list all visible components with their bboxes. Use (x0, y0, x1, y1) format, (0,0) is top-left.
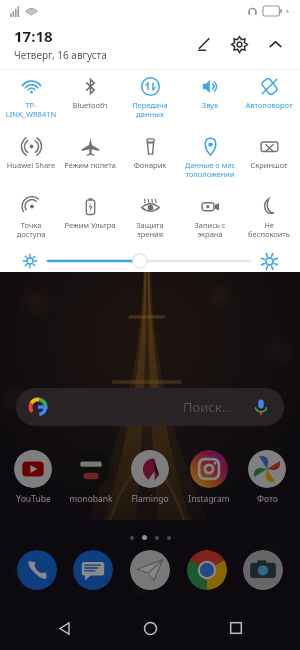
staticText: Фото (257, 493, 278, 505)
button[interactable]: Lower brightness (20, 251, 40, 271)
staticText: Фонарик (121, 160, 179, 170)
button[interactable]: Автоповорот (240, 74, 298, 130)
staticText: Flamingo (131, 493, 169, 505)
staticText: Запись с экрана (181, 220, 239, 239)
staticText: Защита зрения (121, 220, 179, 239)
button[interactable]: Back (42, 606, 86, 650)
staticText: Четверг, 16 августа (14, 48, 107, 62)
button[interactable]: Edit (190, 31, 216, 57)
button[interactable]: Voice search (252, 398, 270, 416)
staticText: Поиск… (183, 398, 232, 416)
staticText: 17:18 (14, 26, 53, 46)
button[interactable]: Режим Ультра (61, 194, 119, 250)
button[interactable]: Режим полета (61, 134, 119, 190)
staticText: Instagram (188, 493, 230, 505)
button[interactable]: Скриншот (240, 134, 298, 190)
button[interactable]: Фото (241, 450, 293, 505)
button[interactable]: Settings (226, 31, 252, 57)
button[interactable]: Данные о мес тоположении (181, 134, 239, 190)
button[interactable]: Huawei Share (2, 134, 60, 190)
button[interactable]: Поиск… (16, 388, 284, 426)
button[interactable]: Запись с экрана (181, 194, 239, 250)
button[interactable]: Camera (243, 550, 283, 590)
button[interactable] (48, 250, 250, 272)
staticText: Передача данных (121, 100, 179, 119)
button[interactable]: Flamingo (124, 450, 176, 505)
staticText: YouTube (16, 493, 51, 505)
button[interactable]: Не беспокоить (240, 194, 298, 250)
button[interactable]: TP- LINK_WR841N (2, 74, 60, 130)
staticText: Huawei Share (2, 160, 60, 170)
button[interactable]: Collapse (262, 31, 288, 57)
button[interactable]: monobank (65, 450, 117, 505)
button[interactable]: Raise brightness (258, 250, 280, 272)
button[interactable]: Bluetooth (61, 74, 119, 130)
button[interactable]: Home (128, 606, 172, 650)
staticText: Автоповорот (240, 100, 298, 110)
button[interactable]: Звук (181, 74, 239, 130)
staticText: Точка доступа (2, 220, 60, 239)
staticText: TP- LINK_WR841N (2, 100, 60, 119)
staticText: Не беспокоить (240, 220, 298, 239)
staticText: monobank (69, 493, 113, 505)
staticText: Скриншот (240, 160, 298, 170)
staticText: Режим Ультра (61, 220, 119, 230)
button[interactable]: Messages (73, 550, 113, 590)
button[interactable]: Instagram (183, 450, 235, 505)
button[interactable]: Передача данных (121, 74, 179, 130)
button[interactable]: Защита зрения (121, 194, 179, 250)
button[interactable]: Фонарик (121, 134, 179, 190)
button[interactable]: Telegram (130, 550, 170, 590)
staticText: Данные о мес тоположении (181, 160, 239, 179)
button[interactable]: Phone (17, 550, 57, 590)
staticText: Звук (181, 100, 239, 110)
button[interactable]: Recents (214, 606, 258, 650)
button[interactable]: YouTube (7, 450, 59, 505)
button[interactable]: Chrome (187, 550, 227, 590)
button[interactable]: Точка доступа (2, 194, 60, 250)
staticText: Bluetooth (61, 100, 119, 110)
staticText: Режим полета (61, 160, 119, 170)
